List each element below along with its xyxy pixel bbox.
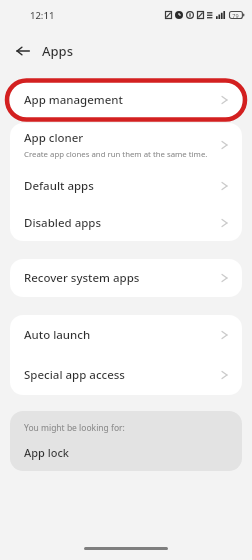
button[interactable]: Recover system apps bbox=[10, 259, 242, 297]
staticText: 12:11 bbox=[30, 9, 55, 22]
staticText: App management bbox=[24, 92, 123, 108]
staticText: Default apps bbox=[24, 178, 94, 194]
button[interactable]: App management bbox=[10, 81, 242, 119]
button[interactable]: Auto launch bbox=[10, 315, 242, 355]
staticText: App lock bbox=[24, 445, 69, 460]
staticText: Recover system apps bbox=[24, 270, 140, 286]
staticText: Apps bbox=[42, 42, 73, 60]
button[interactable]: Special app access bbox=[10, 355, 242, 395]
staticText: You might be looking for: bbox=[24, 422, 125, 434]
button[interactable]: App lock bbox=[24, 445, 69, 460]
button[interactable]: Disabled apps bbox=[10, 204, 242, 241]
button[interactable]: Back bbox=[13, 41, 33, 61]
staticText: Disabled apps bbox=[24, 215, 102, 231]
staticText: App cloner bbox=[24, 130, 84, 146]
staticText: Create app clones and run them at the sa… bbox=[24, 149, 208, 160]
staticText: Special app access bbox=[24, 367, 125, 383]
button[interactable]: Default apps bbox=[10, 167, 242, 204]
staticText: Auto launch bbox=[24, 327, 91, 343]
staticText: 79 bbox=[232, 12, 239, 19]
button[interactable]: App cloner bbox=[10, 123, 242, 167]
